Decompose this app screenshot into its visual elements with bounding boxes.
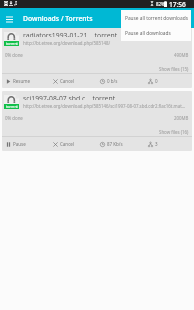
staticText: Pause all torrent downloads (125, 15, 188, 22)
staticText: 0 (155, 78, 158, 84)
staticText: torrent (6, 104, 18, 109)
staticText: Show files (16) (159, 129, 189, 135)
button[interactable]: torrent (2, 28, 192, 88)
button[interactable]: torrent (2, 91, 192, 151)
staticText: torrent (6, 41, 18, 46)
button[interactable]: Resume (2, 74, 49, 88)
button[interactable]: Pause all torrent downloads (121, 10, 191, 26)
staticText: 17:56 (169, 0, 186, 8)
button[interactable]: Cancel (49, 137, 96, 151)
staticText: http://bt.etree.org/download.php/585148/ (23, 40, 111, 46)
staticText: http://bt.etree.org/download.php/585146/… (23, 103, 186, 109)
staticText: 0% done (5, 52, 23, 58)
button[interactable]: Pause all downloads (121, 26, 191, 41)
staticText: Cancel (60, 78, 75, 84)
staticText: 0% done (5, 115, 23, 121)
staticText: 200MB (174, 115, 189, 121)
staticText: Pause all downloads (125, 30, 171, 37)
staticText: Cancel (60, 141, 75, 147)
staticText: 3 (155, 141, 158, 147)
staticText: 87 Kb/s (107, 141, 123, 147)
staticText: Show files (15) (159, 66, 189, 72)
staticText: sci1997-08-07.sbd.c....torrent (23, 94, 116, 100)
button[interactable]: Open navigation drawer (0, 9, 19, 28)
staticText: 490MB (174, 52, 189, 58)
button[interactable]: Cancel (49, 74, 96, 88)
staticText: 82% (156, 1, 165, 7)
staticText: Resume (13, 78, 31, 84)
staticText: 0 b/s (107, 78, 118, 84)
button[interactable]: Pause (2, 137, 49, 151)
staticText: Pause (13, 141, 26, 147)
staticText: radiators1993-01-21....torrent (23, 31, 118, 37)
staticText: Downloads / Torrents (23, 14, 93, 23)
